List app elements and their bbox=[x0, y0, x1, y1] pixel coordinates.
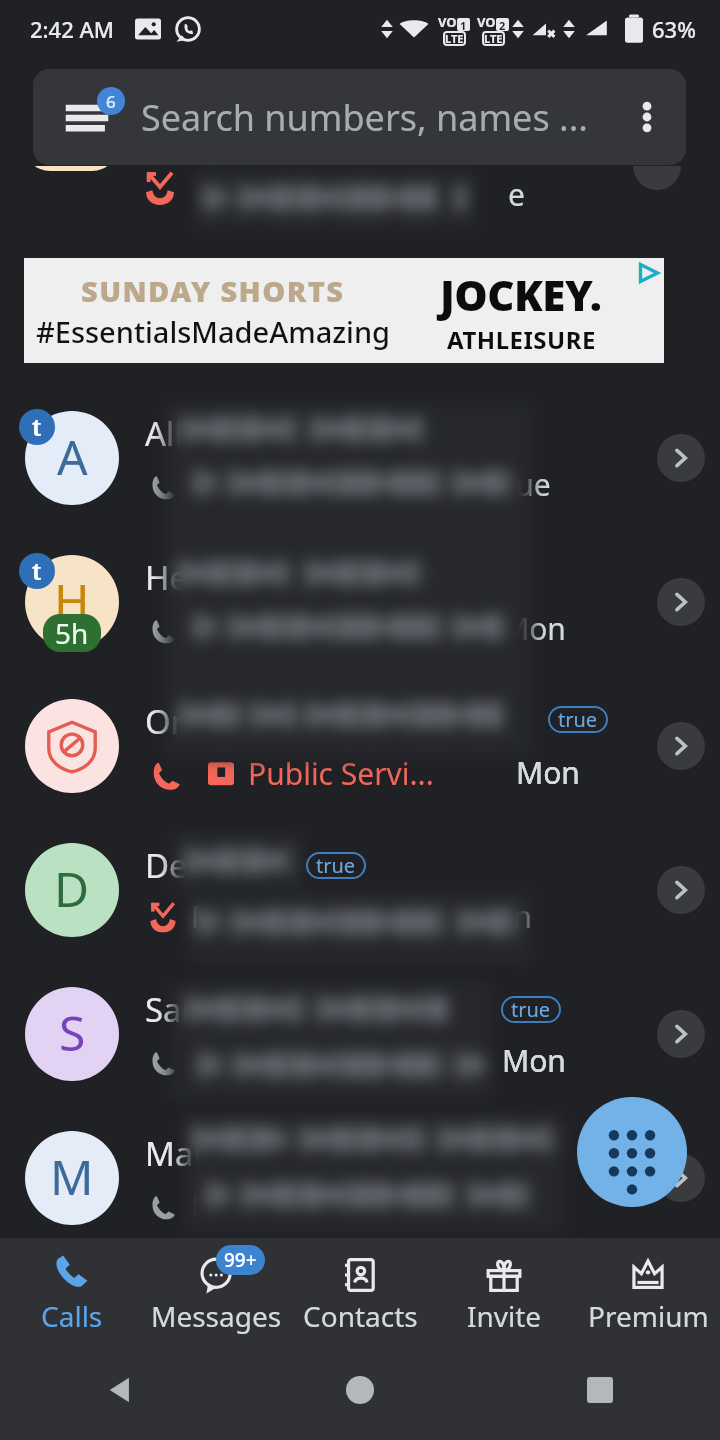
button[interactable]: Invite bbox=[432, 1238, 576, 1350]
button[interactable]: On Call Customer bbox=[0, 674, 720, 818]
button[interactable]: Details bbox=[657, 722, 705, 770]
staticText: Sandra Tappet bbox=[145, 987, 368, 1032]
staticText: Mobile call bbox=[191, 608, 342, 649]
staticText: true bbox=[558, 706, 598, 733]
staticText: VO bbox=[477, 13, 496, 31]
other: Back bbox=[104, 1374, 136, 1406]
staticText: Contacts bbox=[303, 1297, 418, 1335]
staticText: 6 bbox=[106, 90, 116, 113]
staticText: t bbox=[32, 555, 42, 586]
staticText: Mon bbox=[516, 752, 580, 793]
other: Recents bbox=[587, 1377, 613, 1403]
button[interactable]: Details bbox=[657, 434, 705, 482]
staticText: Deborah bbox=[145, 843, 280, 888]
button[interactable]: H bbox=[0, 530, 720, 674]
staticText: 1 bbox=[460, 18, 467, 31]
staticText: Mark Nurse Health bbox=[145, 1131, 438, 1176]
staticText: D bbox=[54, 856, 90, 921]
button[interactable]: Calls bbox=[0, 1238, 144, 1350]
button[interactable]: Menu bbox=[59, 89, 115, 145]
button[interactable]: Details bbox=[657, 866, 705, 914]
staticText: Search numbers, names ... bbox=[141, 93, 588, 142]
staticText: Mobile call bbox=[191, 464, 342, 505]
staticText: Mon bbox=[483, 1184, 547, 1225]
staticText: #EssentialsMadeAmazing bbox=[36, 312, 391, 351]
staticText: Allison Reilly bbox=[145, 411, 338, 456]
staticText: LTE bbox=[445, 31, 464, 46]
other: Home bbox=[346, 1376, 374, 1404]
staticText: ATHLEISURE bbox=[447, 323, 596, 356]
staticText: Heather Mayer bbox=[145, 555, 378, 600]
staticText: 2:42 AM bbox=[30, 14, 115, 44]
staticText: Mon bbox=[516, 752, 580, 793]
button[interactable]: Dialpad bbox=[577, 1097, 687, 1207]
staticText: 99+ bbox=[224, 1247, 257, 1273]
staticText: Public Servi... bbox=[248, 753, 434, 794]
button[interactable]: Home bbox=[240, 1340, 480, 1440]
button[interactable]: D bbox=[0, 818, 720, 962]
staticText: Mon bbox=[502, 608, 566, 649]
staticText: Mon bbox=[502, 1040, 566, 1081]
button[interactable]: Premium bbox=[576, 1238, 720, 1350]
staticText: Mobile call bbox=[191, 1184, 342, 1225]
button[interactable]: A bbox=[0, 386, 720, 530]
staticText: H bbox=[54, 568, 90, 633]
button[interactable]: Recents bbox=[480, 1340, 720, 1440]
staticText: Premium bbox=[588, 1297, 709, 1335]
staticText: 63% bbox=[652, 14, 696, 44]
button[interactable]: More options bbox=[620, 90, 674, 144]
button[interactable]: M bbox=[0, 1106, 720, 1238]
button[interactable]: SUNDAY SHORTS bbox=[24, 258, 664, 363]
staticText: JOCKEY. bbox=[440, 266, 602, 323]
button[interactable]: S bbox=[0, 962, 720, 1106]
staticText: A bbox=[57, 424, 88, 489]
staticText: Messages bbox=[151, 1297, 282, 1335]
staticText: SUNDAY SHORTS bbox=[81, 271, 345, 310]
staticText: Tue bbox=[500, 464, 551, 505]
staticText: Mobile call bbox=[191, 1040, 342, 1081]
staticText: true bbox=[511, 996, 551, 1023]
staticText: S bbox=[59, 1000, 86, 1065]
button[interactable]: 99+ bbox=[144, 1238, 288, 1350]
button[interactable]: Back bbox=[0, 1340, 240, 1440]
staticText: M bbox=[50, 1144, 94, 1209]
staticText: true bbox=[316, 852, 356, 879]
button[interactable]: Details bbox=[657, 1010, 705, 1058]
button[interactable]: Contacts bbox=[288, 1238, 432, 1350]
staticText: Mon bbox=[468, 896, 532, 937]
button[interactable]: Menu bbox=[33, 69, 686, 165]
button[interactable]: Details bbox=[657, 578, 705, 626]
staticText: LTE bbox=[484, 31, 503, 46]
staticText: t bbox=[32, 411, 42, 442]
staticText: Mon bbox=[502, 1040, 566, 1081]
staticText: Invite bbox=[467, 1297, 542, 1335]
staticText: VO bbox=[438, 13, 457, 31]
staticText: Calls bbox=[41, 1297, 103, 1335]
staticText: On Call Customer bbox=[145, 699, 417, 744]
staticText: e bbox=[508, 174, 525, 215]
staticText: 2 bbox=[499, 18, 506, 31]
staticText: Mobile call bbox=[191, 896, 342, 937]
button[interactable]: Details bbox=[657, 1154, 705, 1202]
staticText: 5h bbox=[55, 614, 89, 652]
